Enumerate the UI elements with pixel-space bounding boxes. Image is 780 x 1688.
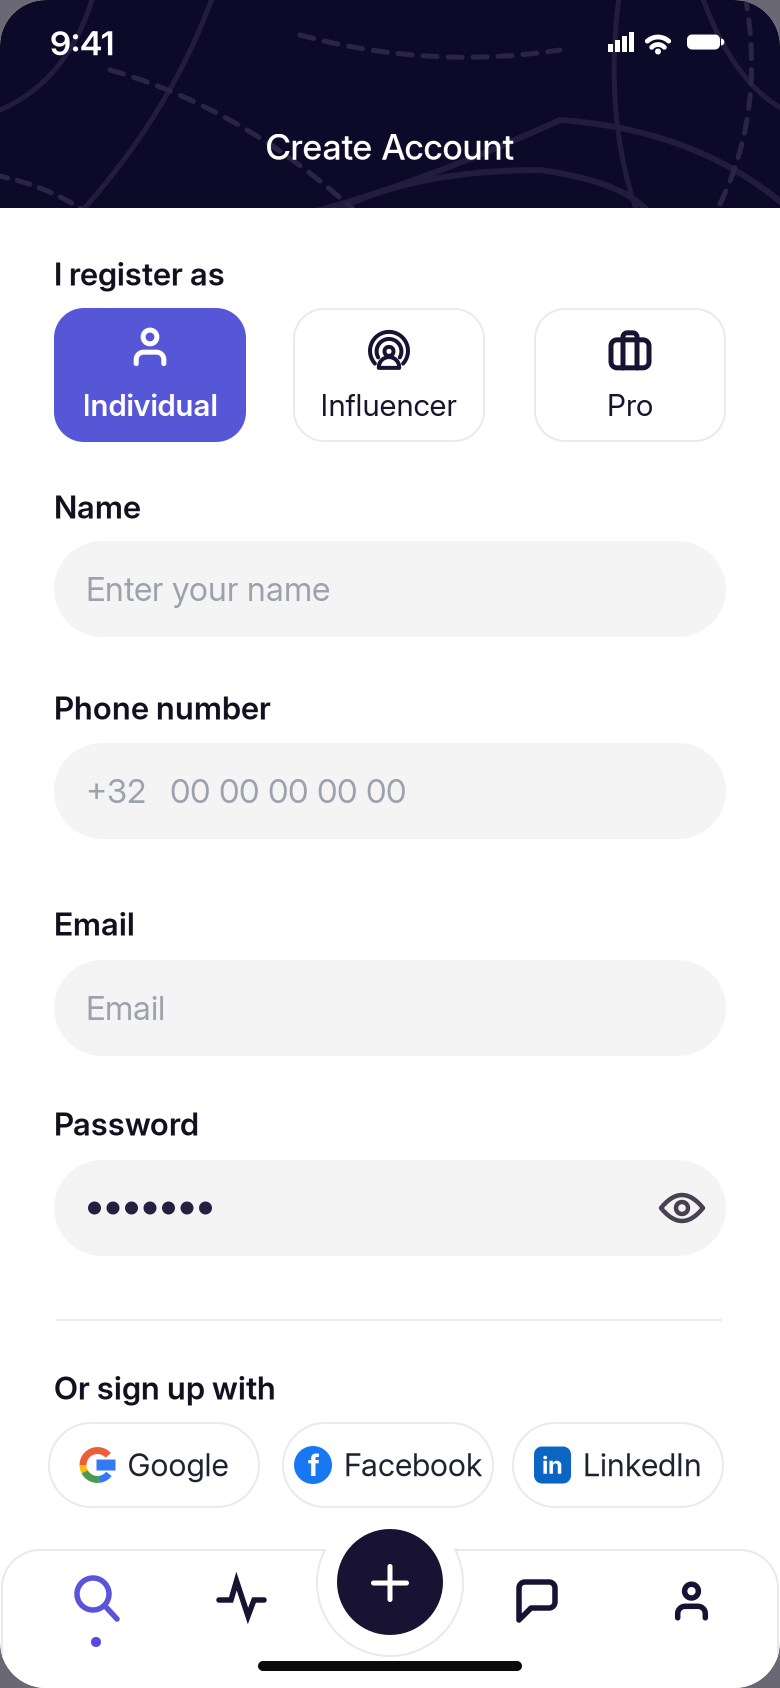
staticText: +32 [86,771,146,811]
staticText: Name [54,488,141,526]
button[interactable]: Search [0,0,780,1688]
button[interactable]: Activity [0,0,780,1688]
staticText: Email [86,988,165,1028]
staticText: f [308,1447,320,1483]
button[interactable]: in [512,1422,724,1508]
button[interactable]: Influencer [293,308,485,442]
staticText: Password [54,1105,199,1143]
staticText: Influencer [320,387,457,423]
button[interactable]: Google [48,1422,260,1508]
button[interactable]: Messages [0,0,780,1688]
staticText: Email [54,905,135,943]
staticText: Or sign up with [54,1369,276,1407]
button[interactable]: Pro [534,308,726,442]
staticText: I register as [54,255,225,293]
staticText: Facebook [344,1446,482,1484]
staticText: Enter your name [86,569,330,609]
staticText: LinkedIn [583,1446,702,1484]
staticText: 00 00 00 00 00 [170,771,406,811]
staticText: Individual [82,387,217,423]
button[interactable]: Add [0,0,780,1688]
button[interactable]: Profile [0,0,780,1688]
staticText: Phone number [54,689,271,727]
button[interactable]: Show password [660,1186,704,1230]
button[interactable]: f [282,1422,494,1508]
staticText: 9:41 [50,22,114,63]
button[interactable]: Individual [54,308,246,442]
staticText: in [542,1450,563,1479]
staticText: Google [127,1446,228,1484]
staticText: Create Account [265,126,514,168]
staticText: Pro [607,387,653,423]
